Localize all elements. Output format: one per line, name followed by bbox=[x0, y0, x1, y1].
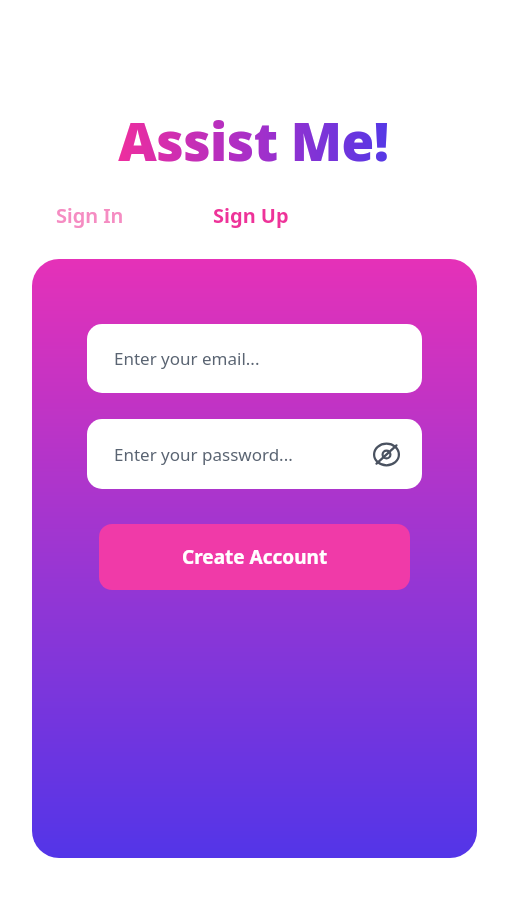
staticText: Sign In bbox=[56, 202, 124, 229]
staticText: Enter your password... bbox=[114, 443, 293, 466]
button[interactable]: Enter your password... bbox=[87, 419, 422, 489]
button[interactable]: Sign In bbox=[0, 198, 179, 232]
button[interactable]: Enter your email... bbox=[87, 324, 422, 393]
staticText: Create Account bbox=[182, 544, 328, 570]
staticText: Sign Up bbox=[213, 202, 289, 229]
button[interactable]: Show password bbox=[368, 436, 404, 472]
button[interactable]: Create Account bbox=[99, 524, 410, 590]
staticText: Enter your email... bbox=[114, 347, 260, 370]
button[interactable]: Sign Up bbox=[179, 198, 322, 232]
staticText: Assist Me! bbox=[118, 104, 389, 176]
